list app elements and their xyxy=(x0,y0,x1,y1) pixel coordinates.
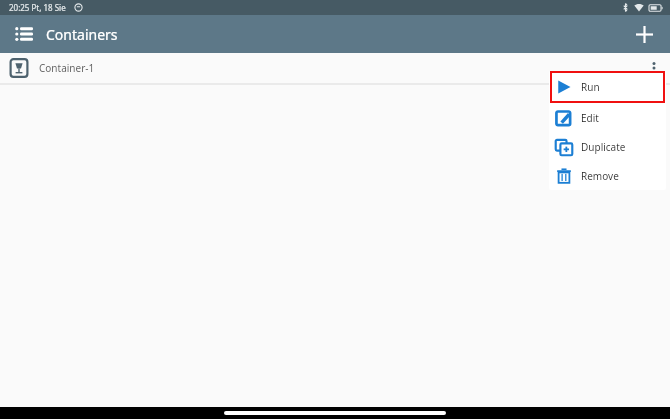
staticText: Remove xyxy=(581,169,619,183)
button[interactable]: Run xyxy=(549,71,666,103)
button[interactable]: Edit xyxy=(549,103,666,132)
staticText: Duplicate xyxy=(581,140,626,154)
staticText: Edit xyxy=(581,111,599,125)
button[interactable]: Open navigation drawer xyxy=(6,16,42,52)
staticText: 20:25 Pt, 18 Sie xyxy=(9,2,66,13)
button[interactable]: More options xyxy=(640,54,668,82)
button[interactable]: Container-1 xyxy=(0,53,670,83)
button[interactable]: Add container xyxy=(626,16,662,52)
staticText: Containers xyxy=(46,25,118,44)
staticText: Run xyxy=(581,80,600,94)
staticText: Container-1 xyxy=(39,61,95,75)
button[interactable]: Duplicate xyxy=(549,132,666,161)
button[interactable]: Remove xyxy=(549,161,666,190)
